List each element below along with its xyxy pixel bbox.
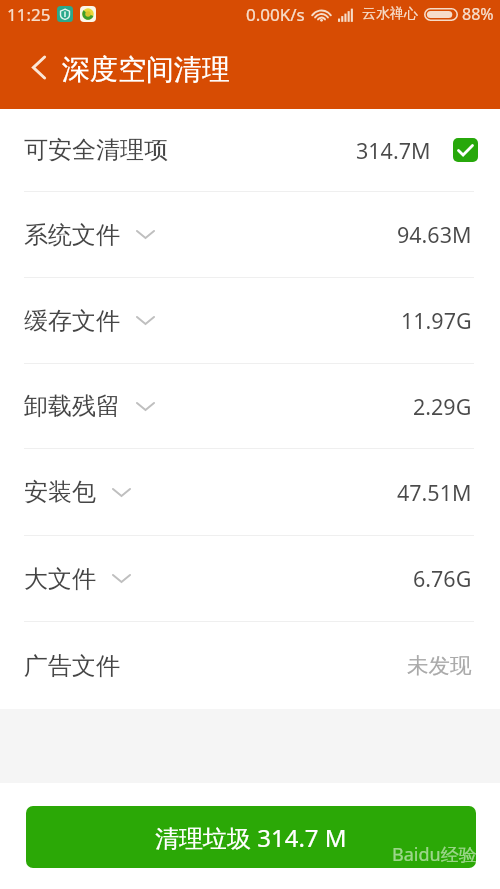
- button[interactable]: 可安全清理项: [0, 109, 500, 191]
- staticText: 安装包: [24, 477, 96, 507]
- staticText: 清理垃圾 314.7 M: [155, 821, 347, 854]
- staticText: 广告文件: [24, 651, 120, 681]
- staticText: 系统文件: [24, 220, 120, 250]
- button[interactable]: 大文件: [0, 536, 500, 621]
- button[interactable]: Back: [20, 48, 58, 86]
- staticText: 6.76G: [413, 564, 472, 593]
- button[interactable]: 安装包: [0, 449, 500, 535]
- button[interactable]: 广告文件: [0, 622, 500, 709]
- staticText: 11.97G: [401, 306, 472, 335]
- staticText: 314.7M: [356, 136, 431, 165]
- staticText: 47.51M: [397, 478, 472, 507]
- staticText: 云水禅心: [362, 5, 418, 23]
- staticText: 卸载残留: [24, 391, 120, 421]
- staticText: 缓存文件: [24, 306, 120, 336]
- staticText: 深度空间清理: [62, 52, 230, 87]
- button[interactable]: 清理垃圾 314.7 M: [26, 806, 476, 868]
- staticText: jingyan.baidu.com: [391, 867, 478, 881]
- staticText: 2.29G: [413, 392, 472, 421]
- staticText: 可安全清理项: [24, 135, 168, 165]
- staticText: 大文件: [24, 564, 96, 594]
- staticText: 未发现: [407, 652, 472, 679]
- staticText: 94.63M: [397, 220, 472, 249]
- button[interactable]: Selected: [453, 138, 478, 162]
- staticText: Baidu经验: [392, 842, 477, 867]
- button[interactable]: 缓存文件: [0, 278, 500, 363]
- staticText: 11:25: [7, 3, 51, 26]
- button[interactable]: 卸载残留: [0, 364, 500, 448]
- staticText: 0.00K/s: [246, 3, 305, 26]
- staticText: 88%: [462, 3, 494, 25]
- button[interactable]: 系统文件: [0, 192, 500, 277]
